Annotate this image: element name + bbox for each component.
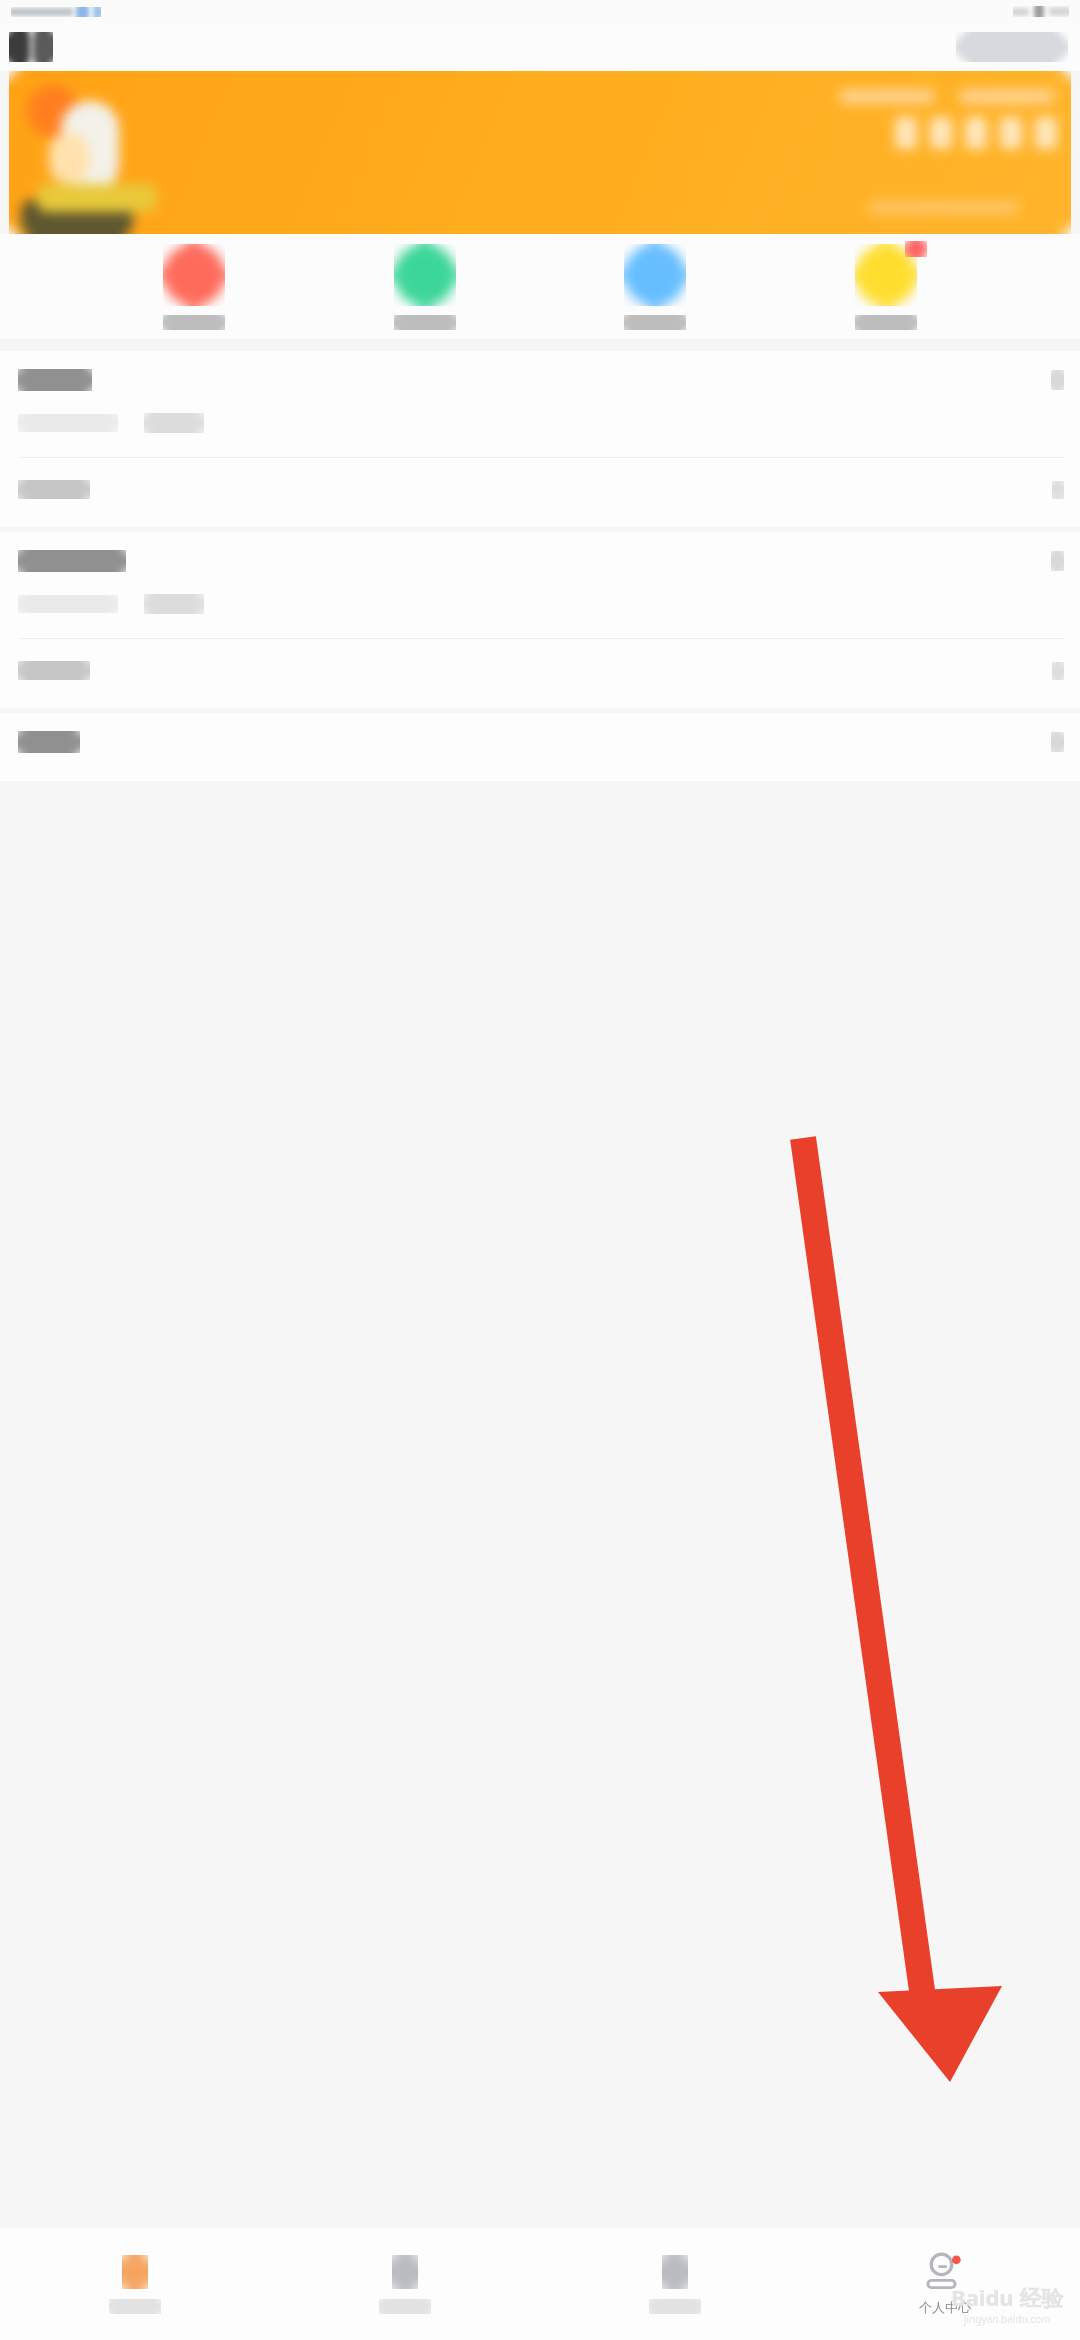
button[interactable]: [0, 713, 1080, 781]
staticText: Baidu 经验: [951, 2282, 1064, 2312]
button[interactable]: Shortcut: [618, 244, 692, 330]
button[interactable]: [956, 32, 1068, 62]
button[interactable]: Tab: [540, 2228, 810, 2340]
button[interactable]: Shortcut: [849, 244, 923, 330]
button[interactable]: 个人中心: [810, 2228, 1080, 2340]
staticText: jingyan.baidu.com: [964, 2312, 1051, 2326]
button[interactable]: Shortcut: [157, 244, 231, 330]
button[interactable]: [0, 532, 1080, 708]
button[interactable]: [0, 351, 1080, 527]
staticText: 个人中心: [919, 2299, 971, 2315]
button[interactable]: Tab: [270, 2228, 540, 2340]
button[interactable]: Shortcut: [388, 244, 462, 330]
button[interactable]: Tab: [0, 2228, 270, 2340]
button[interactable]: [9, 71, 1071, 234]
